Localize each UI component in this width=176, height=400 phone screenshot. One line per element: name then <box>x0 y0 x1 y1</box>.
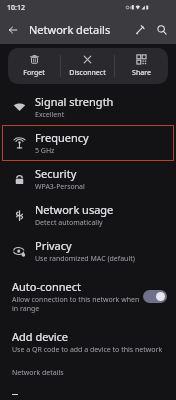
staticText: Detect automatically <box>35 218 103 228</box>
staticText: Frequency <box>35 130 89 145</box>
button[interactable]: Edit <box>128 18 152 42</box>
staticText: Use a QR code to add a device to this ne… <box>12 345 163 355</box>
staticText: 5 GHz <box>35 146 55 156</box>
staticText: Security <box>35 166 77 181</box>
staticText: Allow connection to this network when in… <box>12 295 143 313</box>
staticText: Share <box>132 68 151 78</box>
staticText: 10:12 <box>7 3 25 13</box>
button[interactable]: Type <box>0 385 176 400</box>
staticText: Auto-connect <box>12 279 81 294</box>
staticText: Signal strength <box>35 94 114 109</box>
button[interactable]: Disconnect <box>61 48 114 84</box>
button[interactable]: Forget <box>8 48 60 84</box>
button[interactable]: Search <box>152 18 172 42</box>
staticText: Network usage <box>35 202 114 217</box>
button[interactable]: Share <box>115 48 168 84</box>
button[interactable]: Add device <box>0 324 176 360</box>
staticText: Excellent <box>35 110 65 120</box>
staticText: Disconnect <box>69 68 106 78</box>
button[interactable]: Security <box>2 161 174 197</box>
staticText: WPA3-Personal <box>35 182 85 192</box>
staticText: Privacy <box>35 238 72 253</box>
staticText: Network details <box>29 22 128 37</box>
button[interactable]: Frequency <box>2 125 174 161</box>
button[interactable]: Network usage <box>2 197 174 233</box>
staticText: Forget <box>23 68 45 78</box>
button[interactable]: Auto-connect <box>0 275 176 317</box>
staticText: Type <box>12 390 37 395</box>
button[interactable]: Privacy <box>2 233 174 269</box>
staticText: Add device <box>12 329 69 344</box>
staticText: Use randomized MAC (default) <box>35 254 135 264</box>
staticText: Network details <box>12 368 64 378</box>
button[interactable]: Back <box>0 17 26 43</box>
button[interactable]: Signal strength <box>2 89 174 125</box>
